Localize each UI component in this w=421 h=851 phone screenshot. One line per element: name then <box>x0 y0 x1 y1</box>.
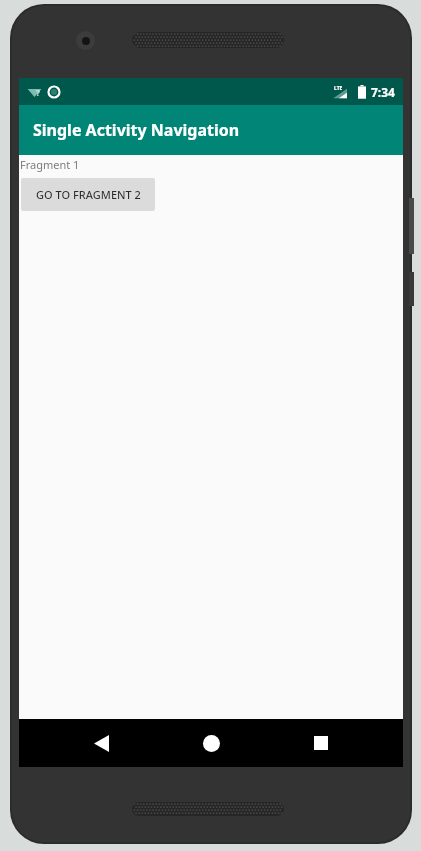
staticText: LTE <box>334 85 343 92</box>
button[interactable]: Home <box>183 719 239 767</box>
staticText: Fragment 1 <box>20 157 80 172</box>
staticText: 7:34 <box>371 84 395 100</box>
staticText: Single Activity Navigation <box>33 119 240 141</box>
button[interactable]: Recent apps <box>293 719 349 767</box>
staticText: ? <box>36 87 40 98</box>
staticText: GO TO FRAGMENT 2 <box>36 187 141 202</box>
button[interactable]: Back <box>73 719 129 767</box>
button[interactable]: GO TO FRAGMENT 2 <box>21 178 155 211</box>
